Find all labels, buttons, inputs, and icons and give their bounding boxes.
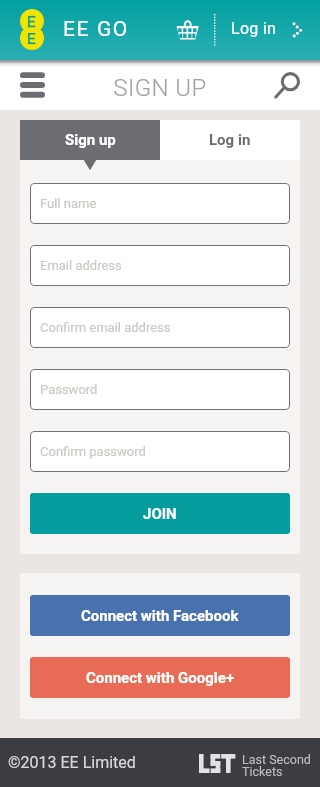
button[interactable]: Basket xyxy=(176,19,200,41)
staticText: Connect with Google+ xyxy=(86,669,235,687)
button[interactable]: Password xyxy=(30,369,290,410)
staticText: Password xyxy=(40,382,98,397)
staticText: SIGN UP xyxy=(0,74,320,102)
staticText: Confirm password xyxy=(40,444,146,459)
button[interactable]: Search xyxy=(273,70,303,100)
staticText: EE GO xyxy=(63,17,129,42)
staticText: Full name xyxy=(40,196,97,211)
button[interactable]: JOIN xyxy=(30,493,290,534)
staticText: ©2013 EE Limited xyxy=(8,753,136,772)
staticText: Log in xyxy=(231,19,277,38)
button[interactable]: Account xyxy=(289,20,307,40)
button[interactable]: Log in xyxy=(224,14,284,43)
button[interactable]: Confirm email address xyxy=(30,307,290,348)
staticText: Last Second Tickets xyxy=(242,752,311,779)
staticText: Confirm email address xyxy=(40,320,171,335)
button[interactable]: Confirm password xyxy=(30,431,290,472)
button[interactable]: Sign up xyxy=(20,120,160,160)
other: Last Second Tickets xyxy=(199,754,236,773)
staticText: Log in xyxy=(209,131,251,149)
button[interactable]: EE home xyxy=(20,9,44,50)
staticText: JOIN xyxy=(143,505,177,523)
button[interactable]: Connect with Facebook xyxy=(30,595,290,636)
button[interactable]: Log in xyxy=(160,120,300,160)
staticText: Sign up xyxy=(65,131,116,149)
button[interactable]: Connect with Google+ xyxy=(30,657,290,698)
staticText: Email address xyxy=(40,258,122,273)
button[interactable]: Menu xyxy=(20,71,45,95)
button[interactable]: Email address xyxy=(30,245,290,286)
button[interactable]: Full name xyxy=(30,183,290,224)
staticText: Connect with Facebook xyxy=(81,607,239,625)
